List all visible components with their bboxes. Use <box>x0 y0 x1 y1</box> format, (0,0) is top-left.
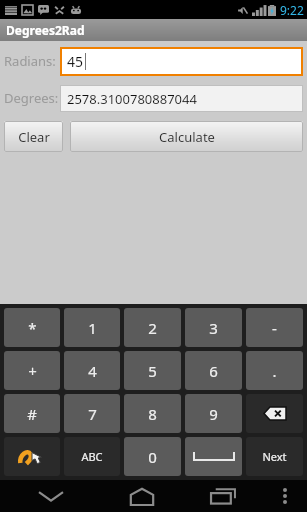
button[interactable]: 3 <box>185 308 242 347</box>
staticText: Degrees: <box>4 89 60 107</box>
staticText: 9:22 <box>280 2 304 18</box>
staticText: 2578.3100780887044 <box>67 90 197 108</box>
staticText: 7 <box>88 404 97 424</box>
button[interactable]: 45 <box>60 47 303 76</box>
button[interactable]: ABC <box>64 437 120 476</box>
staticText: 8 <box>148 404 157 424</box>
staticText: Clear <box>18 128 50 146</box>
staticText: 6 <box>209 361 218 381</box>
button[interactable]: 9 <box>185 394 242 433</box>
button[interactable]: 5 <box>124 351 181 390</box>
button[interactable]: Swipe input <box>4 437 60 476</box>
button[interactable]: # <box>4 394 60 433</box>
staticText: ABC <box>81 449 103 464</box>
button[interactable]: - <box>246 308 303 347</box>
staticText: 45 <box>67 52 84 71</box>
button[interactable]: 0 <box>124 437 181 476</box>
staticText: 4 <box>88 361 97 381</box>
staticText: 5 <box>148 361 157 381</box>
button[interactable]: Clear <box>4 121 63 152</box>
button[interactable]: Next <box>246 437 303 476</box>
staticText: # <box>27 404 37 424</box>
staticText: 1 <box>88 318 97 338</box>
button[interactable]: . <box>246 351 303 390</box>
staticText: Calculate <box>159 128 215 146</box>
staticText: - <box>272 318 277 338</box>
button[interactable]: More options <box>263 480 307 512</box>
button[interactable]: Recent apps <box>182 480 263 512</box>
staticText: . <box>272 361 277 381</box>
button[interactable]: * <box>4 308 60 347</box>
button[interactable]: 2 <box>124 308 181 347</box>
button[interactable]: 7 <box>64 394 120 433</box>
staticText: 9 <box>209 404 218 424</box>
button[interactable]: Space <box>185 437 242 476</box>
staticText: 0 <box>148 447 157 467</box>
button[interactable]: 2578.3100780887044 <box>60 85 303 112</box>
button[interactable]: + <box>4 351 60 390</box>
staticText: * <box>28 318 37 338</box>
button[interactable]: Hide keyboard <box>0 480 101 512</box>
staticText: 3 <box>209 318 218 338</box>
staticText: Degrees2Rad <box>6 22 85 38</box>
button[interactable]: Delete <box>246 394 303 433</box>
button[interactable]: Home <box>101 480 182 512</box>
staticText: Radians: <box>4 52 60 70</box>
staticText: + <box>28 361 37 381</box>
staticText: 2 <box>148 318 157 338</box>
button[interactable]: Calculate <box>70 121 303 152</box>
button[interactable]: 1 <box>64 308 120 347</box>
button[interactable]: 4 <box>64 351 120 390</box>
button[interactable]: 8 <box>124 394 181 433</box>
button[interactable]: 6 <box>185 351 242 390</box>
staticText: Next <box>262 449 287 464</box>
